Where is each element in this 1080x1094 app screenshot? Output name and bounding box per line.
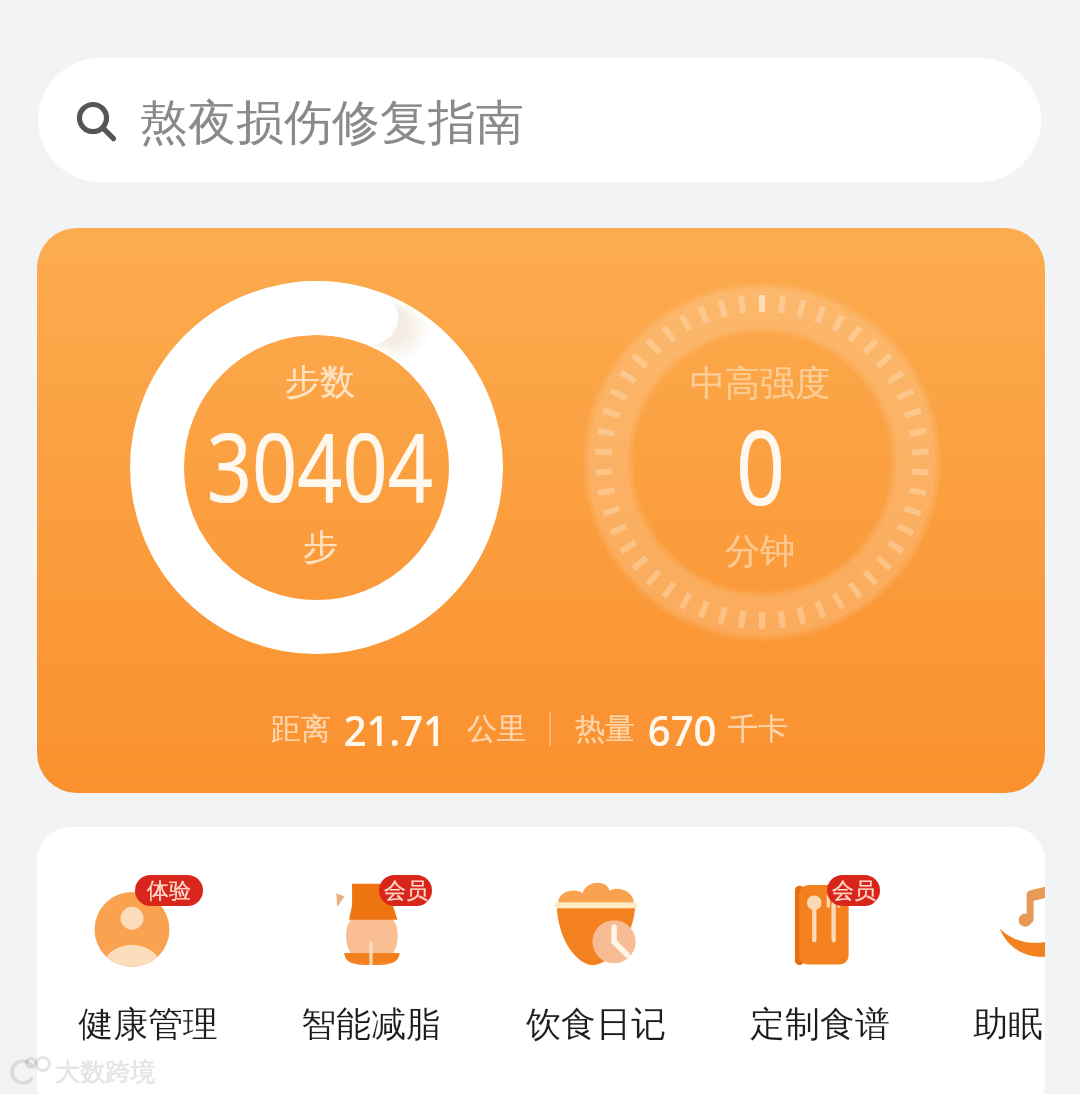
staticText: 会员 [832,877,876,905]
staticText: 30404 [207,400,433,529]
staticText: 会员 [384,877,428,905]
other: Search [70,92,126,148]
staticText: 千卡 [728,710,788,748]
staticText: 热量 [575,710,635,748]
staticText: 670 [648,701,717,758]
staticText: 步数 [285,360,355,404]
button[interactable]: 助眠 [896,827,1045,1094]
staticText: 21.71 [344,701,446,758]
staticText: 智能减脂 [301,1002,441,1046]
button[interactable]: 体验 [37,827,260,1094]
button[interactable]: 步数 [37,228,1045,793]
button[interactable]: 会员 [259,827,483,1094]
staticText: 饮食日记 [526,1002,666,1046]
staticText: 健康管理 [78,1002,218,1046]
button[interactable]: 饮食日记 [484,827,708,1094]
staticText: 熬夜损伤修复指南 [140,93,524,153]
staticText: 公里 [467,710,527,748]
staticText: 助眠 [973,1002,1043,1046]
staticText: 体验 [147,877,191,905]
button[interactable]: 会员 [708,827,932,1094]
staticText: 0 [736,395,785,535]
staticText: 距离 [271,710,331,748]
staticText: 步 [303,525,338,569]
staticText: 大数跨境 [55,1057,155,1088]
staticText: 中高强度 [690,361,830,405]
button[interactable]: Search [38,58,1041,182]
staticText: 定制食谱 [750,1002,890,1046]
staticText: 分钟 [725,529,795,573]
